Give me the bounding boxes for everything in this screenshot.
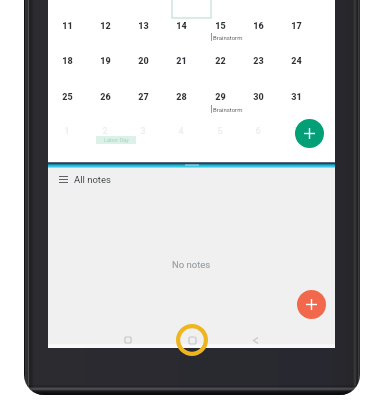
staticText: 5 bbox=[217, 126, 223, 137]
staticText: 20 bbox=[138, 56, 149, 67]
staticText: 30 bbox=[253, 92, 264, 103]
button[interactable]: 14 bbox=[168, 17, 194, 35]
button[interactable]: 24 bbox=[283, 52, 309, 70]
button[interactable]: 29 bbox=[207, 88, 233, 106]
staticText: 11 bbox=[62, 21, 73, 32]
staticText: 21 bbox=[176, 56, 187, 67]
staticText: Labor Day bbox=[104, 137, 129, 143]
staticText: No notes bbox=[172, 259, 211, 270]
staticText: 26 bbox=[100, 92, 111, 103]
staticText: 4 bbox=[178, 126, 184, 137]
other: Menu bbox=[59, 176, 68, 183]
staticText: 2 bbox=[102, 126, 108, 137]
staticText: 12 bbox=[100, 21, 111, 32]
button[interactable]: 26 bbox=[92, 88, 118, 106]
button[interactable]: 17 bbox=[283, 17, 309, 35]
staticText: 18 bbox=[62, 56, 73, 67]
button[interactable]: Brainstorm bbox=[211, 33, 243, 41]
staticText: 6 bbox=[255, 126, 261, 137]
staticText: 15 bbox=[215, 21, 226, 32]
button[interactable]: Labor Day bbox=[96, 136, 136, 144]
button[interactable]: Brainstorm bbox=[211, 105, 243, 113]
button[interactable]: 28 bbox=[168, 88, 194, 106]
button[interactable]: Back bbox=[246, 331, 264, 349]
staticText: 19 bbox=[100, 56, 111, 67]
button[interactable]: 23 bbox=[245, 52, 271, 70]
button[interactable]: 19 bbox=[92, 52, 118, 70]
button[interactable]: Resize panes bbox=[185, 164, 199, 166]
staticText: 16 bbox=[253, 21, 264, 32]
staticText: 31 bbox=[291, 92, 302, 103]
button[interactable]: 27 bbox=[130, 88, 156, 106]
staticText: 22 bbox=[215, 56, 226, 67]
staticText: 25 bbox=[62, 92, 73, 103]
button[interactable]: 22 bbox=[207, 52, 233, 70]
button[interactable]: 3 bbox=[130, 122, 156, 140]
button[interactable]: 2 bbox=[92, 122, 118, 140]
button[interactable]: 12 bbox=[92, 17, 118, 35]
staticText: 3 bbox=[140, 126, 146, 137]
button[interactable]: 7 bbox=[283, 122, 309, 140]
button[interactable]: Recent apps bbox=[119, 331, 137, 349]
staticText: 14 bbox=[176, 21, 187, 32]
staticText: 27 bbox=[138, 92, 149, 103]
button[interactable]: 13 bbox=[130, 17, 156, 35]
staticText: Brainstorm bbox=[213, 106, 243, 113]
button[interactable]: Menu bbox=[48, 168, 335, 190]
staticText: 28 bbox=[176, 92, 187, 103]
staticText: 17 bbox=[291, 21, 302, 32]
staticText: 7 bbox=[293, 126, 299, 137]
button[interactable]: Create event bbox=[295, 119, 324, 148]
button[interactable]: 15 bbox=[207, 17, 233, 35]
button[interactable]: 30 bbox=[245, 88, 271, 106]
button[interactable]: 18 bbox=[54, 52, 80, 70]
button[interactable]: 16 bbox=[245, 17, 271, 35]
button[interactable]: Create note bbox=[297, 290, 326, 319]
staticText: 23 bbox=[253, 56, 264, 67]
button[interactable]: 25 bbox=[54, 88, 80, 106]
staticText: 24 bbox=[291, 56, 302, 67]
staticText: 1 bbox=[64, 126, 70, 137]
button[interactable]: 21 bbox=[168, 52, 194, 70]
button[interactable]: 20 bbox=[130, 52, 156, 70]
button[interactable]: Home bbox=[183, 331, 201, 349]
staticText: Brainstorm bbox=[213, 34, 243, 41]
button[interactable]: 31 bbox=[283, 88, 309, 106]
staticText: All notes bbox=[74, 174, 111, 185]
button[interactable]: 11 bbox=[54, 17, 80, 35]
staticText: 13 bbox=[138, 21, 149, 32]
staticText: 29 bbox=[215, 92, 226, 103]
